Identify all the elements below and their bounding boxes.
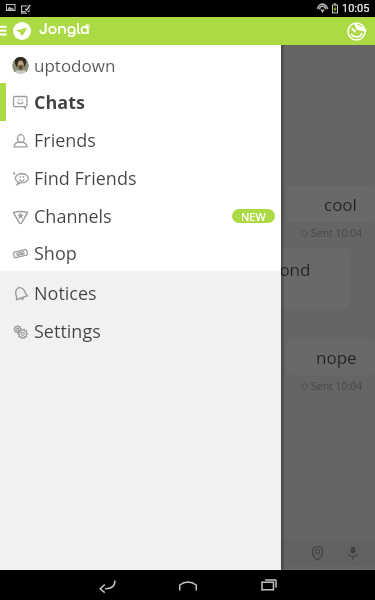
button[interactable]: Channels <box>0 197 281 235</box>
staticText: Jongla <box>39 22 90 38</box>
button[interactable]: Open navigation menu <box>0 17 11 45</box>
staticText: uptodown <box>34 54 116 77</box>
staticText: Friends <box>34 128 96 153</box>
button[interactable]: Shop <box>0 235 281 271</box>
staticText: Sent 10:04 <box>311 379 363 393</box>
staticText: Hi, please respond <box>186 258 326 281</box>
staticText: Find Friends <box>34 166 137 191</box>
button[interactable]: Home <box>168 570 208 600</box>
staticText: NEW <box>241 209 266 223</box>
button[interactable]: Recent apps <box>249 570 289 600</box>
button[interactable]: uptodown <box>0 47 281 83</box>
button[interactable]: Chats <box>0 83 281 121</box>
staticText: Notices <box>34 281 97 306</box>
button[interactable]: Jongla <box>13 22 31 40</box>
staticText: Sent 10:04 <box>311 226 363 240</box>
staticText: Channels <box>34 204 112 229</box>
button[interactable]: Notices <box>0 274 281 312</box>
staticText: 10:05 <box>342 2 370 15</box>
staticText: nope <box>316 346 357 369</box>
button[interactable]: Stickers <box>343 18 369 44</box>
staticText: Chats <box>34 90 85 115</box>
button[interactable]: Friends <box>0 121 281 159</box>
staticText: ® <box>85 23 90 30</box>
button[interactable]: Find Friends <box>0 159 281 197</box>
staticText: Shop <box>34 241 77 266</box>
staticText: cool <box>324 193 357 216</box>
button[interactable]: Back <box>87 570 127 600</box>
button[interactable]: Settings <box>0 312 281 350</box>
staticText: Settings <box>34 319 101 344</box>
